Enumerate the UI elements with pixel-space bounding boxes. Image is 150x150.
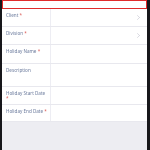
staticText: Client * <box>6 12 23 18</box>
staticText: Description <box>6 67 31 73</box>
button[interactable]: Description <box>2 64 147 86</box>
button[interactable]: Division * <box>2 27 147 44</box>
other: Select Division <box>136 32 141 39</box>
button[interactable]: Holiday End Date * <box>2 105 147 121</box>
other: Select Client <box>136 14 141 21</box>
staticText: Holiday Start Date * <box>6 90 48 102</box>
staticText: Division * <box>6 30 27 36</box>
staticText: Holiday End Date * <box>6 108 47 114</box>
button[interactable]: Holiday Start Date * <box>2 87 147 104</box>
staticText: Holiday Name * <box>6 48 41 54</box>
button[interactable]: Holiday Name * <box>2 45 147 63</box>
button[interactable]: Client * <box>2 9 147 26</box>
